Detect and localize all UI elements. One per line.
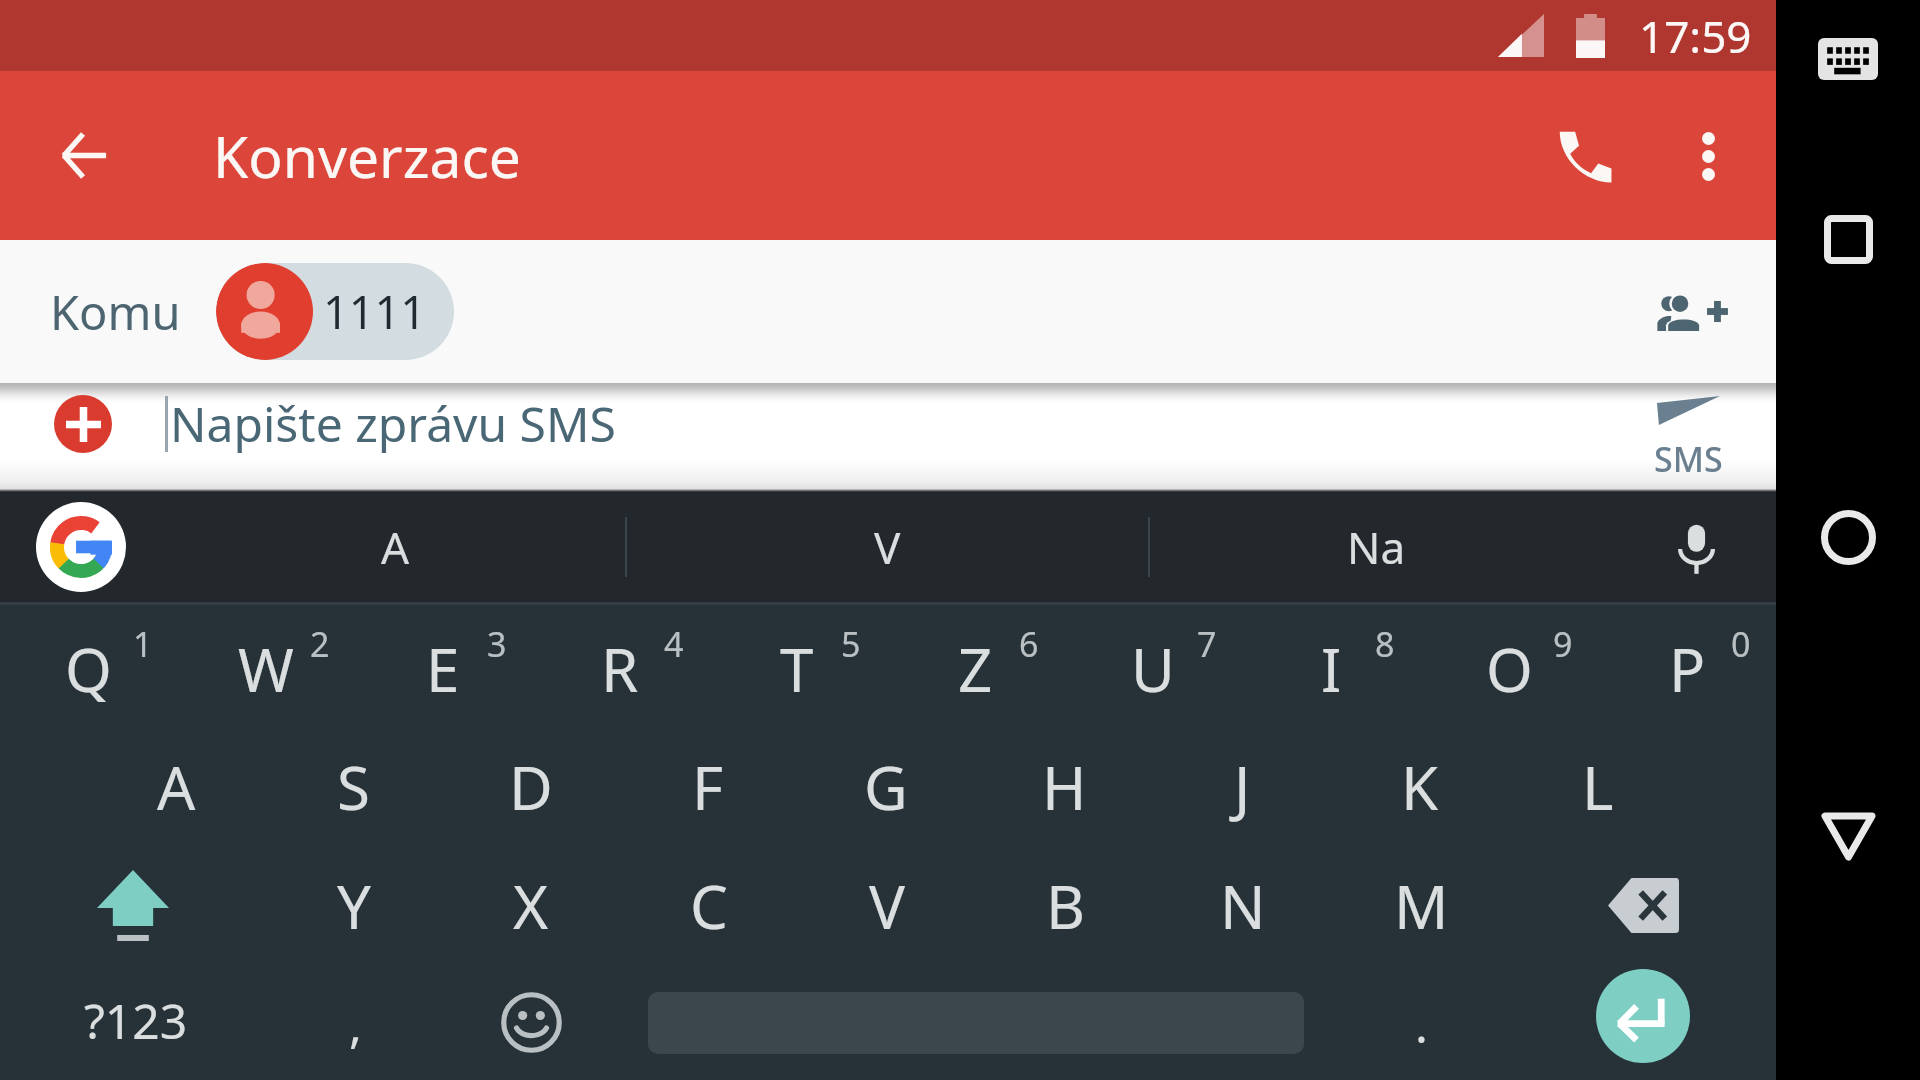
staticText: 17:59 [1639, 6, 1752, 66]
button[interactable]: E [354, 605, 531, 724]
staticText: W [238, 628, 294, 710]
staticText: Y [337, 865, 371, 947]
button[interactable]: Emoji [446, 962, 612, 1080]
button[interactable]: T [708, 605, 886, 724]
staticText: R [601, 628, 639, 710]
button[interactable]: ?123 [0, 962, 262, 1080]
staticText: Q [65, 628, 112, 710]
staticText: B [1046, 865, 1085, 947]
staticText: V [869, 865, 905, 947]
staticText: I [1321, 628, 1342, 710]
button[interactable]: Call [1522, 94, 1646, 218]
staticText: D [509, 746, 553, 828]
button[interactable]: Add recipient [1633, 252, 1753, 372]
button[interactable]: Send SMS [1603, 369, 1773, 478]
staticText: Komu [50, 280, 181, 344]
button[interactable]: , [262, 962, 446, 1080]
button[interactable]: Back [1803, 791, 1893, 881]
staticText: F [692, 746, 724, 828]
button[interactable]: X [442, 843, 620, 962]
button[interactable]: F [619, 724, 797, 843]
button[interactable]: Y [265, 843, 442, 962]
button[interactable]: Voice input [1650, 502, 1740, 592]
button[interactable]: O [1420, 605, 1598, 724]
staticText: 1111 [323, 281, 426, 342]
staticText: K [1401, 746, 1439, 828]
staticText: 0 [1731, 621, 1751, 667]
staticText: N [1220, 865, 1266, 947]
staticText: G [864, 746, 908, 828]
button[interactable]: Google [36, 502, 126, 592]
button[interactable]: N [1154, 843, 1332, 962]
button[interactable]: H [975, 724, 1153, 843]
staticText: S [337, 746, 370, 828]
staticText: J [1234, 746, 1251, 828]
button[interactable]: 1111 [216, 263, 454, 360]
button[interactable]: Keyboard [1806, 17, 1890, 101]
staticText: L [1582, 746, 1614, 828]
button[interactable]: V [627, 492, 1148, 602]
button[interactable]: W [177, 605, 354, 724]
button[interactable]: R [531, 605, 708, 724]
staticText: 2 [310, 621, 330, 667]
button[interactable]: M [1332, 843, 1510, 962]
staticText: 1 [133, 621, 153, 667]
button[interactable]: D [442, 724, 619, 843]
button[interactable]: Backspace [1510, 843, 1776, 962]
button[interactable]: C [620, 843, 798, 962]
button[interactable]: Q [0, 605, 177, 724]
staticText: H [1042, 746, 1087, 828]
staticText: 6 [1019, 621, 1039, 667]
staticText: Z [958, 628, 993, 710]
button[interactable]: V [798, 843, 976, 962]
button[interactable]: A [165, 492, 625, 602]
staticText: 4 [664, 621, 684, 667]
staticText: A [157, 746, 196, 828]
button[interactable]: More options [1646, 94, 1770, 218]
staticText: Na [1347, 517, 1406, 577]
staticText: M [1394, 865, 1449, 947]
button[interactable]: S [265, 724, 442, 843]
button[interactable]: Shift [0, 843, 265, 962]
button[interactable]: Back [0, 71, 168, 240]
button[interactable]: B [976, 843, 1154, 962]
staticText: C [690, 865, 728, 947]
staticText: 5 [841, 621, 861, 667]
button[interactable]: Z [886, 605, 1064, 724]
button[interactable]: U [1064, 605, 1242, 724]
staticText: 8 [1375, 621, 1395, 667]
staticText: 3 [487, 621, 507, 667]
button[interactable]: Home [1803, 492, 1893, 582]
staticText: O [1486, 628, 1533, 710]
button[interactable]: Add attachment [54, 395, 112, 453]
button[interactable]: J [1153, 724, 1331, 843]
button[interactable]: Space [612, 962, 1340, 1080]
button[interactable]: P [1598, 605, 1776, 724]
staticText: ?123 [84, 988, 188, 1053]
button[interactable]: I [1242, 605, 1420, 724]
staticText: A [381, 517, 410, 577]
staticText: E [426, 628, 460, 710]
button[interactable]: . [1340, 962, 1520, 1080]
staticText: P [1669, 628, 1706, 710]
staticText: T [780, 628, 814, 710]
button[interactable]: Na [1150, 492, 1602, 602]
button[interactable]: K [1331, 724, 1509, 843]
button[interactable]: G [797, 724, 975, 843]
staticText: X [513, 865, 549, 947]
button[interactable]: Enter [1596, 969, 1690, 1063]
staticText: 9 [1553, 621, 1573, 667]
staticText: SMS [1654, 436, 1723, 478]
staticText: , [349, 992, 362, 1057]
staticText: Konverzace [213, 117, 521, 195]
staticText: U [1131, 628, 1175, 710]
staticText: V [874, 517, 901, 577]
staticText: Napište zprávu SMS [170, 391, 616, 456]
button[interactable]: A [88, 724, 265, 843]
staticText: 7 [1197, 621, 1217, 667]
button[interactable]: Recent apps [1803, 194, 1893, 284]
button[interactable]: L [1509, 724, 1687, 843]
staticText: . [1415, 992, 1428, 1057]
